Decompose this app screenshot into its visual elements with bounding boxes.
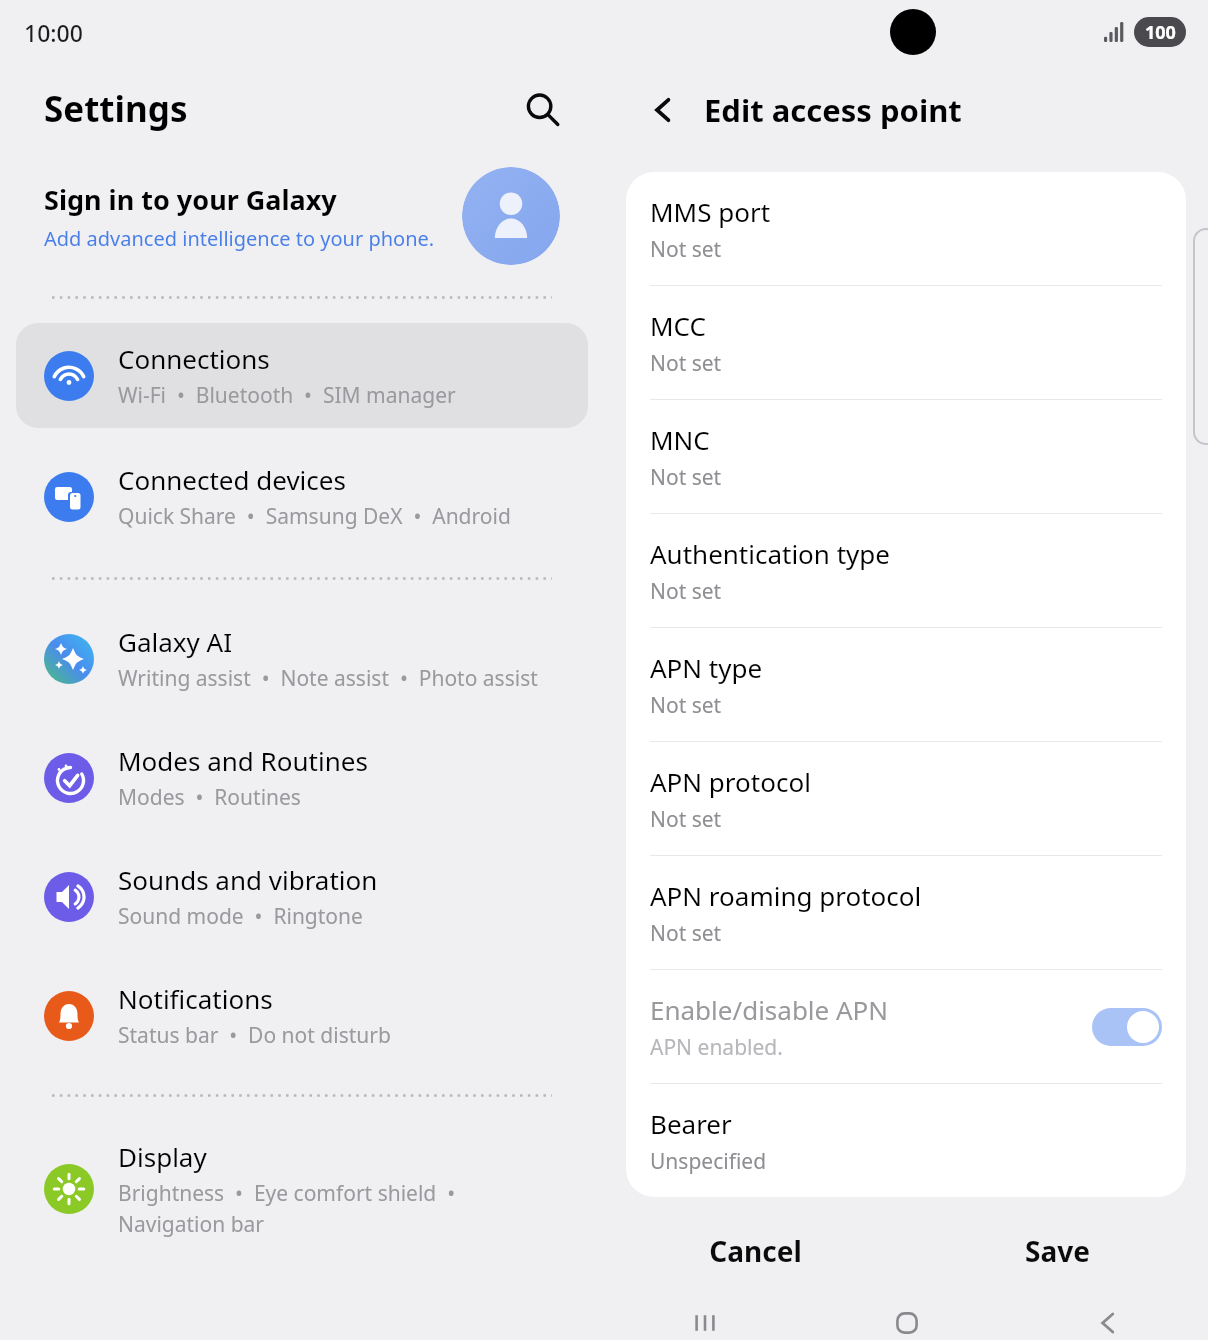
staticText: Sign in to your Galaxy bbox=[44, 181, 337, 218]
button[interactable]: Back bbox=[1007, 1305, 1208, 1340]
staticText: Notifications bbox=[118, 981, 273, 1016]
staticText: Enable/disable APN bbox=[650, 992, 889, 1027]
staticText: Display bbox=[118, 1139, 207, 1174]
button[interactable]: Connected devices bbox=[16, 444, 588, 549]
staticText: APN roaming protocol bbox=[650, 878, 922, 913]
button[interactable]: APN protocol bbox=[626, 742, 1186, 855]
button[interactable]: APN roaming protocol bbox=[626, 856, 1186, 969]
staticText: MCC bbox=[650, 308, 706, 343]
button[interactable]: Search bbox=[516, 83, 568, 135]
button[interactable]: Enable/disable APN toggle bbox=[1092, 1008, 1162, 1046]
button[interactable]: Home bbox=[806, 1305, 1007, 1340]
staticText: Sound mode • Ringtone bbox=[118, 902, 363, 931]
staticText: Save bbox=[1025, 1232, 1090, 1270]
staticText: Not set bbox=[650, 463, 722, 492]
button[interactable]: Back bbox=[636, 83, 690, 137]
staticText: 100 bbox=[1145, 20, 1176, 45]
staticText: Modes • Routines bbox=[118, 783, 301, 812]
staticText: Not set bbox=[650, 235, 722, 264]
staticText: Connections bbox=[118, 341, 270, 376]
staticText: APN protocol bbox=[650, 764, 811, 799]
staticText: Unspecified bbox=[650, 1147, 767, 1176]
button[interactable]: MNC bbox=[626, 400, 1186, 513]
staticText: MMS port bbox=[650, 194, 771, 229]
staticText: Wi-Fi • Bluetooth • SIM manager bbox=[118, 381, 456, 410]
staticText: Status bar • Do not disturb bbox=[118, 1021, 391, 1050]
staticText: Modes and Routines bbox=[118, 743, 368, 778]
staticText: Authentication type bbox=[650, 536, 890, 571]
button[interactable]: Cancel bbox=[604, 1197, 906, 1305]
staticText: Settings bbox=[44, 85, 188, 133]
staticText: Edit access point bbox=[704, 89, 962, 131]
button[interactable]: MCC bbox=[626, 286, 1186, 399]
button[interactable]: Account bbox=[462, 167, 560, 265]
staticText: Quick Share • Samsung DeX • Android Auto bbox=[118, 502, 560, 531]
button[interactable]: Bearer bbox=[626, 1084, 1186, 1197]
button[interactable]: Save bbox=[906, 1197, 1208, 1305]
staticText: Writing assist • Note assist • Photo ass… bbox=[118, 664, 538, 693]
staticText: Bearer bbox=[650, 1106, 732, 1141]
staticText: Brightness • Eye comfort shield • Naviga… bbox=[118, 1179, 560, 1238]
staticText: APN type bbox=[650, 650, 763, 685]
button[interactable]: Sounds and vibration bbox=[16, 844, 588, 949]
button[interactable]: Enable/disable APN bbox=[626, 970, 1186, 1083]
staticText: Galaxy AI bbox=[118, 624, 233, 659]
staticText: APN enabled. bbox=[650, 1033, 783, 1062]
staticText: Not set bbox=[650, 349, 722, 378]
button[interactable]: Notifications bbox=[16, 963, 588, 1068]
button[interactable]: APN type bbox=[626, 628, 1186, 741]
button[interactable]: Modes and Routines bbox=[16, 725, 588, 830]
staticText: Connected devices bbox=[118, 462, 346, 497]
button[interactable]: Display bbox=[16, 1121, 588, 1256]
button[interactable]: MMS port bbox=[626, 172, 1186, 285]
button[interactable]: Galaxy AI bbox=[16, 606, 588, 711]
button[interactable]: Recents bbox=[604, 1305, 806, 1340]
button[interactable]: Authentication type bbox=[626, 514, 1186, 627]
staticText: MNC bbox=[650, 422, 710, 457]
staticText: Not set bbox=[650, 805, 722, 834]
staticText: Not set bbox=[650, 577, 722, 606]
staticText: Cancel bbox=[709, 1232, 802, 1270]
staticText: Not set bbox=[650, 691, 722, 720]
button[interactable]: Connections bbox=[16, 323, 588, 428]
button[interactable]: Sign in to your Galaxy bbox=[0, 154, 604, 278]
staticText: Add advanced intelligence to your phone. bbox=[44, 225, 435, 252]
staticText: Not set bbox=[650, 919, 722, 948]
staticText: Sounds and vibration bbox=[118, 862, 378, 897]
staticText: 10:00 bbox=[24, 17, 83, 48]
